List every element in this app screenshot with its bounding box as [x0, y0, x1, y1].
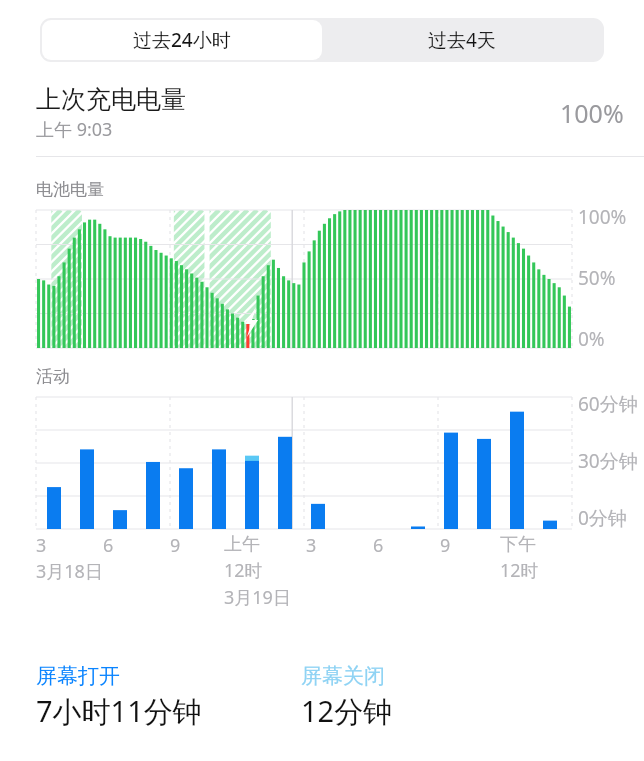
staticText: 0分钟: [578, 505, 627, 531]
staticText: 12分钟: [301, 691, 393, 731]
staticText: 60分钟: [578, 391, 638, 417]
staticText: 9: [440, 533, 451, 558]
button[interactable]: 过去4天: [322, 20, 602, 60]
staticText: 上午 12时: [224, 533, 263, 583]
staticText: 3月18日: [36, 559, 103, 584]
staticText: 7小时11分钟: [36, 691, 202, 731]
staticText: 屏幕关闭: [301, 663, 385, 689]
button[interactable]: 屏幕打开: [36, 663, 301, 731]
staticText: 6: [103, 533, 114, 558]
staticText: 下午 12时: [500, 533, 539, 583]
staticText: 6: [373, 533, 384, 558]
button[interactable]: 过去24小时: [42, 20, 322, 60]
button[interactable]: 屏幕关闭: [301, 663, 393, 731]
staticText: 电池电量: [36, 179, 104, 200]
staticText: 3月19日: [224, 585, 291, 610]
staticText: 0%: [578, 326, 605, 352]
staticText: 30分钟: [578, 448, 638, 474]
staticText: 上午 9:03: [36, 117, 113, 142]
staticText: 上次充电电量: [36, 84, 186, 115]
staticText: 过去4天: [428, 27, 496, 53]
staticText: 50%: [578, 265, 616, 291]
staticText: 屏幕打开: [36, 663, 120, 689]
staticText: 100%: [560, 96, 624, 130]
staticText: 100%: [578, 204, 627, 230]
staticText: 9: [170, 533, 181, 558]
staticText: 3: [36, 533, 47, 558]
staticText: 3: [306, 533, 317, 558]
staticText: 活动: [36, 366, 70, 387]
button[interactable]: 上次充电电量: [36, 84, 624, 142]
staticText: 过去24小时: [133, 27, 231, 53]
